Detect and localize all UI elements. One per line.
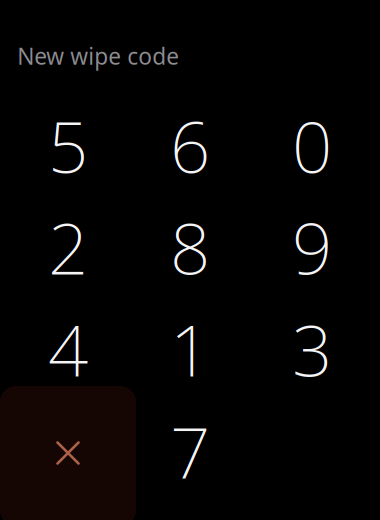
- staticText: 1: [170, 302, 210, 396]
- button[interactable]: 5: [7, 95, 129, 196]
- staticText: 6: [170, 99, 210, 192]
- button[interactable]: 0: [251, 95, 373, 196]
- button[interactable]: 9: [251, 196, 373, 298]
- button[interactable]: 8: [129, 196, 251, 298]
- button[interactable]: 2: [7, 196, 129, 298]
- staticText: 5: [48, 99, 88, 192]
- button[interactable]: 7: [129, 400, 251, 502]
- staticText: 7: [170, 404, 210, 498]
- staticText: 4: [48, 302, 88, 396]
- staticText: 3: [292, 302, 332, 396]
- staticText: 8: [170, 200, 210, 294]
- button[interactable]: 1: [129, 298, 251, 400]
- button[interactable]: 4: [7, 298, 129, 400]
- button[interactable]: 3: [251, 298, 373, 400]
- staticText: 0: [292, 99, 332, 192]
- button[interactable]: Delete: [0, 386, 136, 520]
- staticText: 2: [48, 200, 88, 294]
- button[interactable]: 6: [129, 95, 251, 196]
- staticText: New wipe code: [17, 41, 179, 71]
- staticText: 9: [292, 200, 332, 294]
